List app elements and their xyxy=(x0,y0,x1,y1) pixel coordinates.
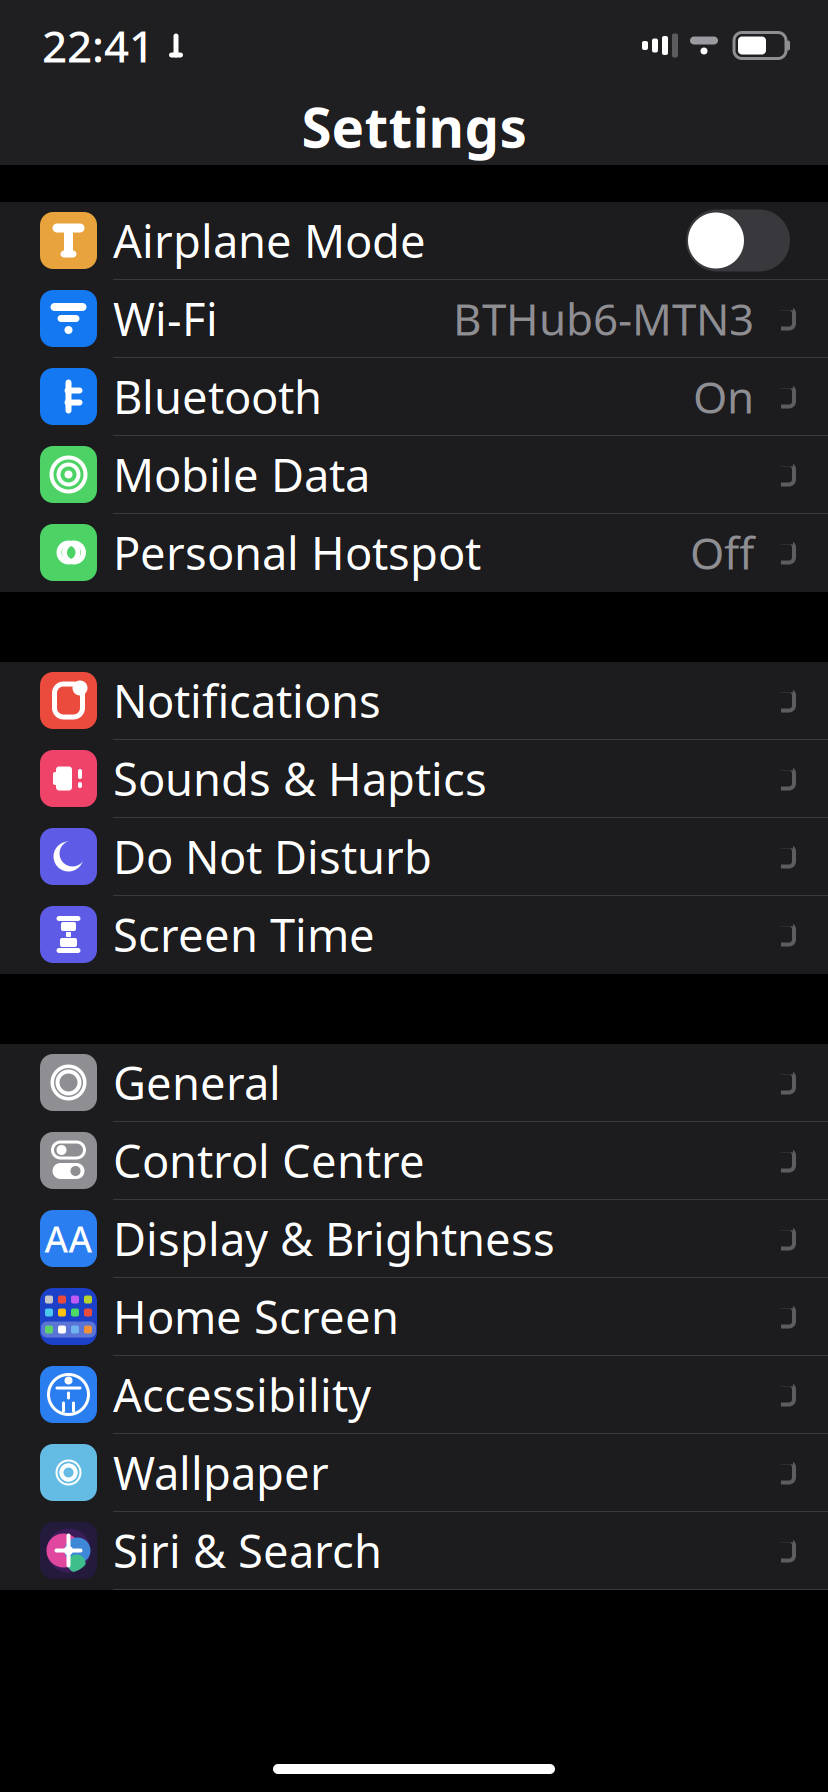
staticText: BTHub6-MTN3 xyxy=(453,289,754,348)
button[interactable]: Wi-Fi xyxy=(0,280,828,358)
staticText: On xyxy=(693,367,754,426)
staticText: Do Not Disturb xyxy=(113,826,432,887)
staticText: Control Centre xyxy=(113,1130,425,1191)
staticText: Personal Hotspot xyxy=(113,522,481,583)
staticText: Bluetooth xyxy=(113,366,322,427)
staticText: AA xyxy=(44,1215,92,1262)
staticText: Off xyxy=(690,523,754,582)
staticText: Airplane Mode xyxy=(113,210,426,271)
button[interactable]: Airplane Mode xyxy=(0,202,828,280)
button[interactable]: Accessibility xyxy=(0,1356,828,1434)
staticText: Sounds & Haptics xyxy=(113,748,487,809)
button[interactable]: Screen Time xyxy=(0,896,828,974)
staticText: Accessibility xyxy=(113,1364,371,1425)
staticText: Home Screen xyxy=(113,1286,399,1347)
button[interactable]: Home Screen xyxy=(0,1278,828,1356)
staticText: Screen Time xyxy=(113,904,375,965)
button[interactable]: Bluetooth xyxy=(0,358,828,436)
button[interactable]: Do Not Disturb xyxy=(0,818,828,896)
staticText: Wallpaper xyxy=(113,1442,329,1503)
button[interactable]: Siri & Search xyxy=(0,1512,828,1590)
staticText: Wi-Fi xyxy=(113,288,218,349)
button[interactable]: Control Centre xyxy=(0,1122,828,1200)
button[interactable]: Notifications xyxy=(0,662,828,740)
button[interactable]: AA xyxy=(0,1200,828,1278)
staticText: Display & Brightness xyxy=(113,1208,555,1269)
staticText: 22:41 xyxy=(42,16,154,75)
button[interactable]: General xyxy=(0,1044,828,1122)
button[interactable]: Mobile Data xyxy=(0,436,828,514)
button[interactable]: Wallpaper xyxy=(0,1434,828,1512)
staticText: Notifications xyxy=(113,670,381,731)
staticText: Mobile Data xyxy=(113,444,370,505)
button[interactable]: Personal Hotspot xyxy=(0,514,828,592)
button[interactable]: Sounds & Haptics xyxy=(0,740,828,818)
staticText: Siri & Search xyxy=(113,1520,382,1581)
staticText: Settings xyxy=(301,90,526,163)
staticText: General xyxy=(113,1052,281,1113)
